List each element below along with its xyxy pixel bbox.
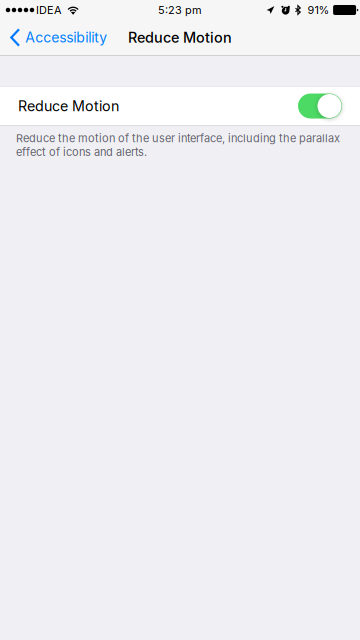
button[interactable]: Reduce Motion xyxy=(0,87,360,125)
staticText: Reduce Motion xyxy=(18,97,119,115)
staticText: Reduce Motion xyxy=(128,29,232,46)
button[interactable]: Accessibility xyxy=(0,20,115,54)
staticText: IDEA xyxy=(36,3,62,17)
staticText: Reduce the motion of the user interface,… xyxy=(16,131,340,145)
staticText: Accessibility xyxy=(25,29,107,46)
staticText: 91% xyxy=(307,3,329,17)
staticText: effect of icons and alerts. xyxy=(16,145,147,159)
staticText: 5:23 pm xyxy=(158,3,202,17)
